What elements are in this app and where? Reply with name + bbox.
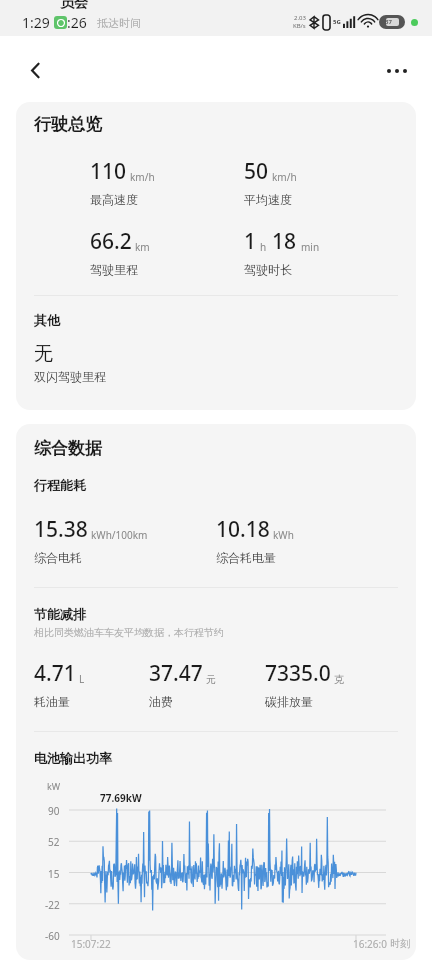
- staticText: 15.38: [34, 515, 88, 544]
- staticText: 克: [334, 673, 344, 686]
- staticText: 66.2: [90, 227, 132, 256]
- staticText: 双闪驾驶里程: [34, 369, 106, 384]
- staticText: 综合耗电量: [216, 550, 276, 565]
- staticText: 18: [272, 227, 297, 256]
- staticText: 综合数据: [34, 438, 102, 459]
- staticText: h: [260, 240, 267, 254]
- staticText: 抵达时间: [97, 16, 141, 30]
- staticText: 无: [34, 342, 53, 366]
- staticText: km: [135, 240, 150, 254]
- staticText: kWh: [273, 528, 294, 542]
- staticText: 90: [48, 804, 60, 818]
- staticText: km/h: [130, 170, 155, 184]
- staticText: 行驶总览: [34, 114, 102, 135]
- staticText: 元: [206, 673, 216, 686]
- staticText: -22: [45, 898, 60, 912]
- button[interactable]: More options: [374, 48, 419, 93]
- staticText: 相比同类燃油车车友平均数据，本行程节约: [34, 626, 224, 639]
- staticText: 15:07:22: [71, 937, 111, 951]
- staticText: KB/s: [293, 22, 306, 30]
- staticText: 最高速度: [90, 192, 138, 207]
- staticText: 耗油量: [34, 694, 70, 709]
- staticText: :26: [67, 13, 87, 32]
- staticText: 7335.0: [265, 659, 331, 688]
- staticText: 1: [244, 227, 257, 256]
- staticText: 77.69kW: [100, 791, 142, 805]
- staticText: 综合电耗: [34, 550, 82, 565]
- staticText: 电池输出功率: [34, 750, 112, 766]
- staticText: 驾驶里程: [90, 262, 138, 277]
- staticText: 碳排放量: [265, 694, 313, 709]
- staticText: 平均速度: [244, 192, 292, 207]
- staticText: 节能减排: [34, 606, 86, 622]
- staticText: 15: [48, 867, 60, 881]
- staticText: 驾驶时长: [244, 262, 292, 277]
- staticText: 时刻: [390, 937, 410, 950]
- staticText: 其他: [34, 312, 60, 328]
- staticText: 50: [244, 157, 269, 186]
- staticText: 4.71: [34, 659, 76, 688]
- staticText: 110: [90, 157, 127, 186]
- button[interactable]: Back: [13, 48, 58, 93]
- staticText: 行程能耗: [34, 477, 86, 493]
- staticText: 37: [385, 18, 392, 26]
- staticText: 5G: [333, 18, 341, 26]
- staticText: min: [301, 240, 320, 254]
- staticText: 2.03: [294, 14, 306, 22]
- staticText: 油费: [149, 694, 173, 709]
- staticText: 10.18: [216, 515, 270, 544]
- staticText: km/h: [272, 170, 297, 184]
- staticText: 37.47: [149, 659, 203, 688]
- staticText: 16:26:0: [353, 937, 387, 951]
- staticText: kWh/100km: [91, 528, 148, 542]
- staticText: 52: [48, 835, 60, 849]
- staticText: -60: [45, 929, 60, 943]
- staticText: 1:29: [22, 13, 50, 32]
- staticText: L: [79, 672, 85, 686]
- staticText: kW: [47, 780, 61, 792]
- staticText: 员会: [60, 0, 88, 12]
